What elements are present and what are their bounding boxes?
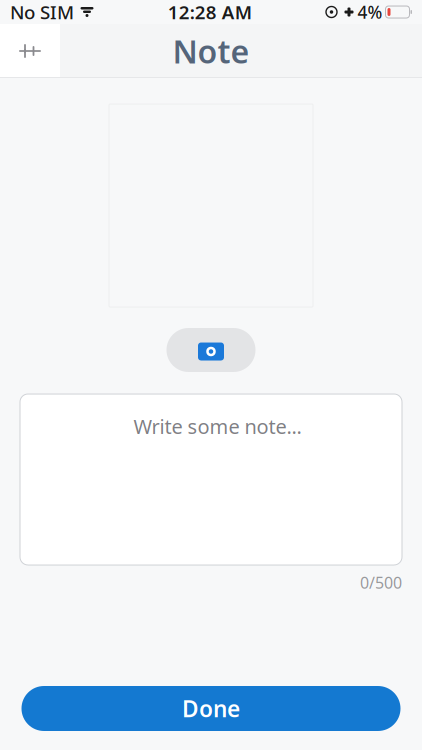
- staticText: No SIM: [10, 0, 74, 24]
- button[interactable]: Take photo: [166, 328, 255, 372]
- staticText: 4%: [357, 0, 382, 23]
- button[interactable]: Done: [21, 686, 400, 731]
- staticText: Write some note...: [133, 413, 301, 440]
- staticText: 0/500: [360, 572, 402, 593]
- staticText: 12:28 AM: [168, 0, 252, 24]
- staticText: Done: [182, 693, 240, 723]
- staticText: Note: [172, 30, 249, 72]
- button[interactable]: Back: [0, 24, 60, 78]
